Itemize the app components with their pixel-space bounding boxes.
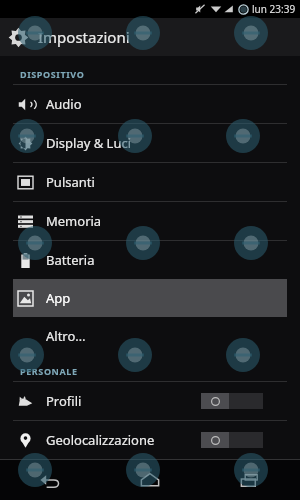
- button[interactable]: Pulsanti: [0, 163, 300, 201]
- button[interactable]: Memoria: [0, 202, 300, 240]
- button[interactable]: App: [13, 279, 287, 317]
- staticText: PERSONALE: [20, 365, 78, 377]
- staticText: lun 23:39: [252, 2, 296, 16]
- staticText: Batteria: [46, 251, 95, 269]
- button[interactable]: Recents: [200, 460, 300, 500]
- staticText: Impostazioni: [38, 27, 130, 47]
- staticText: Memoria: [46, 212, 102, 230]
- staticText: Altro…: [46, 327, 86, 345]
- button[interactable]: Back: [0, 460, 100, 500]
- staticText: DISPOSITIVO: [20, 68, 85, 80]
- staticText: Pulsanti: [46, 173, 95, 191]
- button[interactable]: Batteria: [0, 241, 300, 279]
- button[interactable]: Profili: [0, 382, 300, 420]
- button[interactable]: Altro…: [0, 317, 300, 355]
- button[interactable]: Display & Luci: [0, 124, 300, 162]
- staticText: Audio: [46, 95, 82, 113]
- button[interactable]: Toggle: [201, 393, 263, 409]
- button[interactable]: Audio: [0, 85, 300, 123]
- button[interactable]: Geolocalizzazione: [0, 421, 300, 459]
- staticText: Display & Luci: [46, 134, 132, 152]
- button[interactable]: Home: [100, 460, 200, 500]
- staticText: Profili: [46, 392, 201, 410]
- button[interactable]: Toggle: [201, 432, 263, 448]
- staticText: App: [46, 289, 71, 307]
- staticText: Geolocalizzazione: [46, 431, 201, 449]
